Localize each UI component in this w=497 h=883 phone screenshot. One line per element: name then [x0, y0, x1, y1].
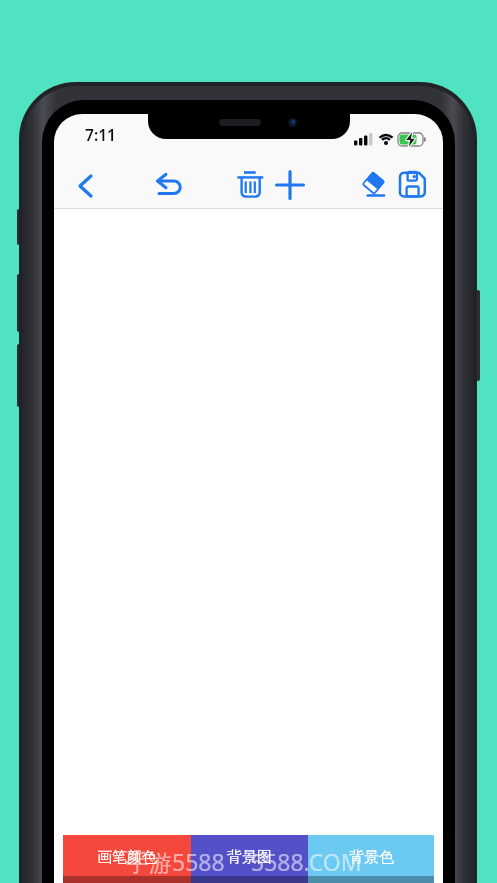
button[interactable] [350, 163, 394, 207]
staticText: 7:11 [85, 124, 116, 145]
button[interactable] [268, 164, 312, 208]
button[interactable] [63, 164, 107, 208]
staticText: 5588.COM [251, 846, 362, 877]
staticText: 画笔颜色 [97, 848, 157, 867]
staticText: 背景色 [349, 848, 394, 867]
staticText: 背景图 [227, 848, 272, 867]
staticText: 手游5588 [126, 846, 225, 877]
button[interactable]: 背景色 [308, 835, 434, 883]
button[interactable] [390, 163, 434, 207]
button[interactable]: 画笔颜色 [63, 835, 191, 883]
button[interactable] [145, 164, 189, 208]
button[interactable]: 背景图 [191, 835, 308, 883]
button[interactable] [228, 164, 272, 208]
